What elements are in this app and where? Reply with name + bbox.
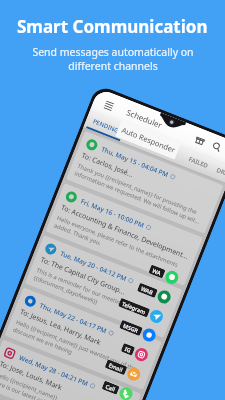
staticText: WA — [151, 267, 162, 276]
staticText: Fri, May 16 - 10:00 PM — [79, 197, 146, 230]
staticText: Thu, May 22 - 04:17 PM — [38, 301, 109, 336]
staticText: This is a reminder for our meeting on — [35, 266, 133, 311]
staticText: Smart Communication — [17, 15, 208, 38]
staticText: Hello everyone, please refer to the atta… — [56, 214, 180, 269]
button[interactable]: Telegram — [29, 261, 165, 326]
staticText: {{document_dayofweek}} — [32, 274, 99, 306]
staticText: Tue, May 20 - 04:12 PM — [59, 249, 128, 283]
staticText: Thu, May 15 - 04:04 PM — [100, 144, 170, 179]
staticText: DRAFTS — [215, 166, 225, 179]
button[interactable]: Fri, May 16 - 10:00 PM — [45, 183, 203, 286]
staticText: PENDING — [92, 117, 121, 135]
staticText: To: Jesus, Lea, Harry, Mark — [18, 307, 102, 348]
staticText: Email — [108, 361, 124, 373]
button[interactable]: Wed, May 28 - 04:21 PM — [0, 339, 141, 400]
button[interactable]: FAILED — [184, 150, 213, 175]
button[interactable]: Thu, May 22 - 04:17 PM — [4, 287, 162, 390]
staticText: SCHEDULED — [134, 134, 170, 155]
button[interactable]: SCHEDULED — [125, 127, 179, 162]
button[interactable]: Thu, May 15 - 04:04 PM — [66, 131, 224, 234]
staticText: IG — [124, 345, 132, 354]
button[interactable]: WA — [45, 221, 181, 287]
staticText: To: Carlos, José... — [80, 151, 135, 180]
button[interactable]: Email — [7, 318, 143, 383]
button[interactable]: MSGR — [22, 279, 158, 344]
staticText: To: Jose, Louis, Mark — [0, 359, 64, 393]
staticText: WAB — [140, 285, 155, 296]
button[interactable]: DRAFTS — [212, 161, 225, 184]
button[interactable]: WAB — [37, 241, 173, 306]
staticText: FAILED — [187, 155, 210, 170]
button[interactable]: Tue, May 20 - 04:12 PM — [25, 235, 183, 338]
button[interactable]: Call — [0, 338, 135, 400]
staticText: MSGR — [122, 322, 140, 334]
staticText: Send messages automatically on different… — [32, 45, 194, 73]
button[interactable]: Menu — [100, 97, 117, 114]
staticText: Hello {{recipient_name}} just wanted you… — [15, 318, 146, 376]
button[interactable]: IG — [14, 299, 150, 364]
staticText: To: The Capital City Group... — [39, 255, 127, 298]
staticText: Here is our latest collection for... — [0, 378, 76, 400]
button[interactable]: Auto Responder — [115, 119, 181, 160]
staticText: information we requested. We will follow… — [73, 169, 201, 226]
staticText: To: Accounting & Finance, Development... — [59, 203, 190, 262]
staticText: discount we are having — [12, 326, 73, 356]
button[interactable]: PENDING — [86, 111, 126, 141]
button[interactable]: Search — [208, 138, 225, 155]
staticText: Hello {{recipient_name}}, — [0, 370, 60, 400]
staticText: Telegram — [121, 300, 147, 315]
button[interactable]: Gift — [192, 132, 208, 149]
staticText: Call — [105, 382, 117, 393]
staticText: Scheduler — [125, 106, 164, 130]
staticText: added. Thank you. — [53, 221, 103, 247]
staticText: Auto Responder — [120, 125, 177, 155]
staticText: Wed, May 28 - 04:21 PM — [18, 353, 90, 388]
staticText: Thank you {{recipient_name}} for providi… — [76, 162, 198, 216]
